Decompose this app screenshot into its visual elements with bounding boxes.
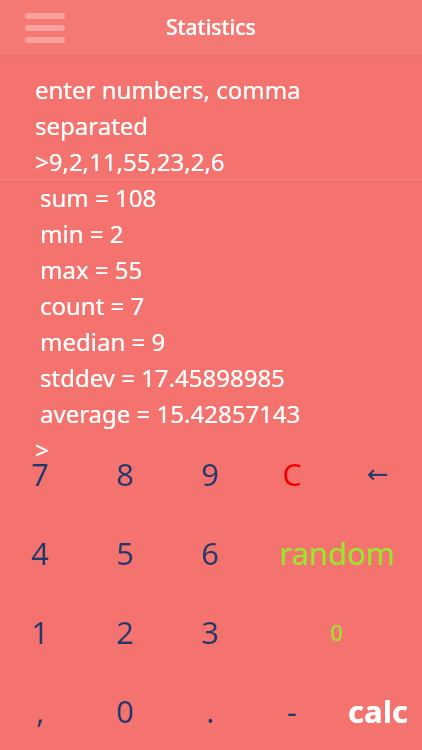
staticText: 7 <box>31 453 49 495</box>
button[interactable]: Backspace <box>336 434 420 513</box>
staticText: count = 7 <box>40 289 145 322</box>
staticText: 9 <box>201 453 219 495</box>
staticText: 5 <box>116 532 134 574</box>
button[interactable]: 4 <box>0 513 82 592</box>
button[interactable]: 5 <box>83 513 167 592</box>
staticText: 4 <box>31 532 49 574</box>
button[interactable]: 9 <box>168 434 252 513</box>
button[interactable]: , <box>0 671 82 750</box>
staticText: , <box>36 690 45 732</box>
staticText: average = 15.42857143 <box>40 397 301 430</box>
staticText: sum = 108 <box>40 181 157 214</box>
staticText: random <box>279 532 395 574</box>
staticText: . <box>206 690 215 732</box>
button[interactable]: 2 <box>83 592 167 671</box>
staticText: 3 <box>201 611 219 653</box>
staticText: separated <box>35 109 149 142</box>
staticText: enter numbers, comma <box>35 73 301 106</box>
button[interactable]: 3 <box>168 592 252 671</box>
staticText: >9,2,11,55,23,2,6 <box>35 145 225 178</box>
button[interactable]: 1 <box>0 592 82 671</box>
button[interactable]: 0 <box>294 592 378 671</box>
staticText: 8 <box>116 453 134 495</box>
staticText: C <box>282 453 302 495</box>
button[interactable]: 7 <box>0 434 82 513</box>
button[interactable]: - <box>250 671 334 750</box>
button[interactable]: 0 <box>83 671 167 750</box>
button[interactable]: 6 <box>168 513 252 592</box>
button[interactable]: calc <box>336 671 420 750</box>
staticText: 0 <box>330 617 343 647</box>
staticText: calc <box>348 690 408 732</box>
staticText: 6 <box>201 532 219 574</box>
staticText: - <box>287 690 297 732</box>
staticText: median = 9 <box>40 325 166 358</box>
staticText: 0 <box>116 690 134 732</box>
button[interactable]: . <box>168 671 252 750</box>
staticText: 1 <box>31 611 49 653</box>
staticText: > <box>35 433 49 466</box>
staticText: min = 2 <box>40 217 124 250</box>
staticText: Statistics <box>166 13 256 42</box>
staticText: stddev = 17.45898985 <box>40 361 285 394</box>
staticText: 2 <box>116 611 134 653</box>
button[interactable]: C <box>250 434 334 513</box>
button[interactable]: Menu <box>22 10 68 46</box>
button[interactable]: random <box>252 513 422 592</box>
staticText: ← <box>367 459 389 489</box>
button[interactable]: 8 <box>83 434 167 513</box>
staticText: max = 55 <box>40 253 143 286</box>
